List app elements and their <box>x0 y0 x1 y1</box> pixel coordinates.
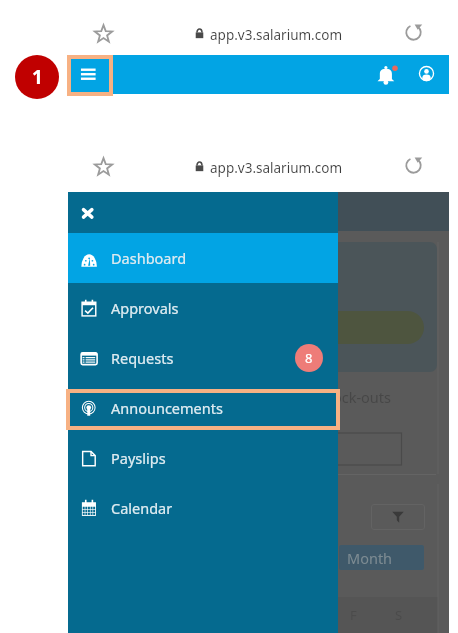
staticText: Calendar <box>111 498 173 518</box>
button[interactable]: Close menu <box>77 201 101 225</box>
button[interactable]: Approvals <box>68 283 338 333</box>
staticText: 8 <box>305 349 313 367</box>
button[interactable]: Notifications <box>68 55 449 94</box>
button[interactable]: Month <box>339 545 424 570</box>
staticText: Approvals <box>111 298 179 318</box>
button[interactable] <box>66 389 340 430</box>
button[interactable]: Dashboard <box>68 233 338 283</box>
button[interactable]: Notifications <box>377 63 401 87</box>
button[interactable]: Reload <box>404 23 423 42</box>
staticText: app.v3.salarium.com <box>210 26 343 44</box>
button[interactable]: Payslips <box>68 433 338 483</box>
button[interactable]: Calendar <box>68 483 338 533</box>
staticText: Dashboard <box>111 248 187 268</box>
button[interactable]: Account <box>419 66 434 81</box>
button[interactable]: Menu <box>67 55 113 96</box>
staticText: Requests <box>111 348 174 368</box>
staticText: Announcements <box>111 398 223 418</box>
staticText: Month <box>347 548 393 568</box>
button[interactable]: Filter <box>371 504 425 530</box>
staticText: Payslips <box>111 448 166 468</box>
button[interactable]: Requests <box>68 333 338 383</box>
staticText: 1 <box>32 64 43 90</box>
staticText: app.v3.salarium.com <box>210 159 343 177</box>
staticText: Record your clock-ins and clock-outs <box>144 387 392 407</box>
staticText: S <box>395 606 403 624</box>
button[interactable]: Reload <box>404 156 423 175</box>
button[interactable]: Announcements <box>68 383 338 433</box>
